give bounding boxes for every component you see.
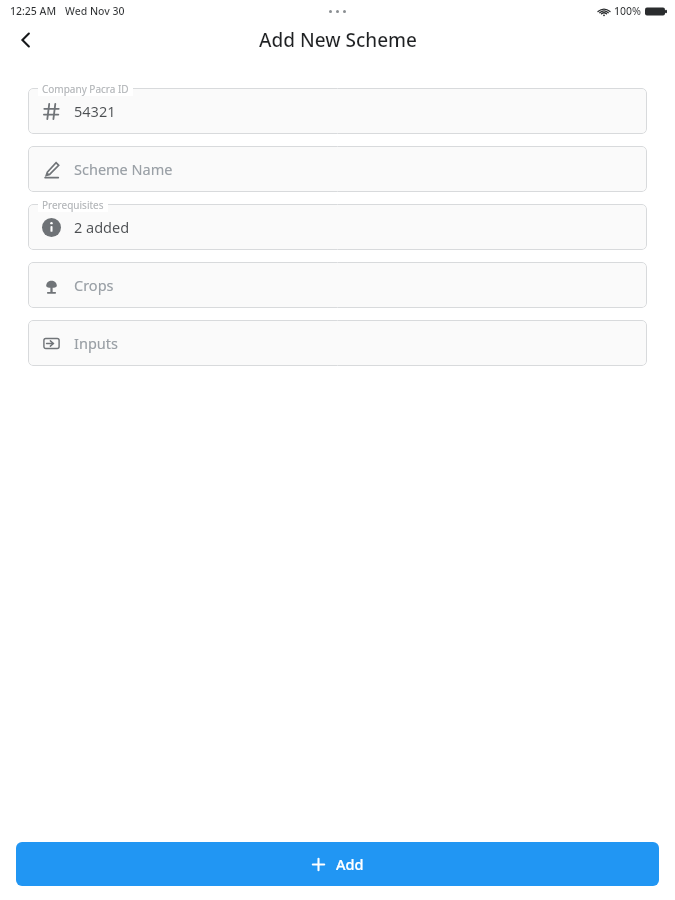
button[interactable]: 54321 bbox=[28, 88, 647, 134]
button[interactable]: Crops bbox=[28, 262, 647, 308]
staticText: Crops bbox=[74, 275, 114, 295]
staticText: Add bbox=[336, 854, 364, 874]
button[interactable]: Inputs bbox=[28, 320, 647, 366]
staticText: Prerequisites bbox=[42, 198, 104, 212]
button[interactable]: Add bbox=[16, 842, 659, 886]
staticText: Add New Scheme bbox=[259, 27, 417, 53]
staticText: 2 added bbox=[74, 217, 130, 237]
staticText: 100% bbox=[614, 4, 641, 18]
button[interactable]: Back bbox=[6, 22, 46, 58]
button[interactable]: 2 added bbox=[28, 204, 647, 250]
staticText: Company Pacra ID bbox=[42, 82, 129, 96]
staticText: 12:25 AM bbox=[10, 4, 57, 18]
staticText: 54321 bbox=[74, 101, 116, 121]
staticText: Scheme Name bbox=[74, 159, 173, 179]
staticText: Wed Nov 30 bbox=[65, 4, 125, 18]
staticText: Inputs bbox=[74, 333, 118, 353]
button[interactable]: Scheme Name bbox=[28, 146, 647, 192]
